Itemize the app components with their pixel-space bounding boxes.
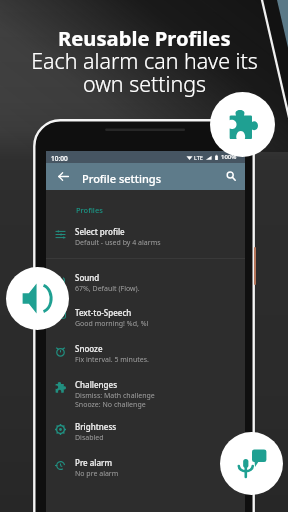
staticText: Snooze	[75, 343, 103, 354]
button[interactable]: Text to speech	[220, 432, 283, 495]
staticText: Text-to-Speech	[75, 307, 132, 318]
staticText: Sound	[75, 272, 100, 283]
button[interactable]: Pre alarm	[46, 454, 245, 487]
button[interactable]: Search	[218, 163, 244, 189]
staticText: Each alarm can have its own settings	[31, 46, 258, 98]
staticText: 100%	[221, 153, 237, 161]
button[interactable]: Snooze	[46, 340, 245, 373]
staticText: 10:00	[51, 154, 68, 163]
button[interactable]: Brightness	[46, 418, 245, 451]
button[interactable]: Challenges	[46, 376, 245, 416]
staticText: Profile settings	[82, 171, 162, 186]
staticText: Fix interval. 5 minutes.	[75, 355, 149, 365]
button[interactable]: Back	[50, 163, 76, 189]
staticText: Pre alarm	[75, 457, 113, 468]
staticText: Default - used by 4 alarms	[75, 238, 161, 248]
staticText: LTE	[194, 154, 203, 161]
button[interactable]: Sound	[46, 269, 245, 302]
button[interactable]: Sound	[6, 267, 69, 330]
staticText: Profiles	[76, 205, 103, 215]
staticText: Reusable Profiles	[58, 24, 231, 52]
staticText: Dismiss: Math challenge Snooze: No chall…	[75, 391, 155, 409]
staticText: Disabled	[75, 433, 104, 443]
staticText: Challenges	[75, 379, 118, 390]
button[interactable]: Text-to-Speech	[46, 304, 245, 337]
button[interactable]: Select profile	[46, 223, 245, 256]
button[interactable]: Profiles	[210, 92, 275, 157]
staticText: No pre alarm	[75, 469, 119, 479]
staticText: Good morning! %d, %l	[75, 319, 149, 329]
staticText: 67%, Default (Flow).	[75, 284, 140, 294]
staticText: Brightness	[75, 421, 117, 432]
staticText: Select profile	[75, 226, 125, 237]
